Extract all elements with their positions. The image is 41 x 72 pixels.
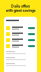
staticText: Daily offers [11,4,30,8]
staticText: with great savings [5,8,35,13]
